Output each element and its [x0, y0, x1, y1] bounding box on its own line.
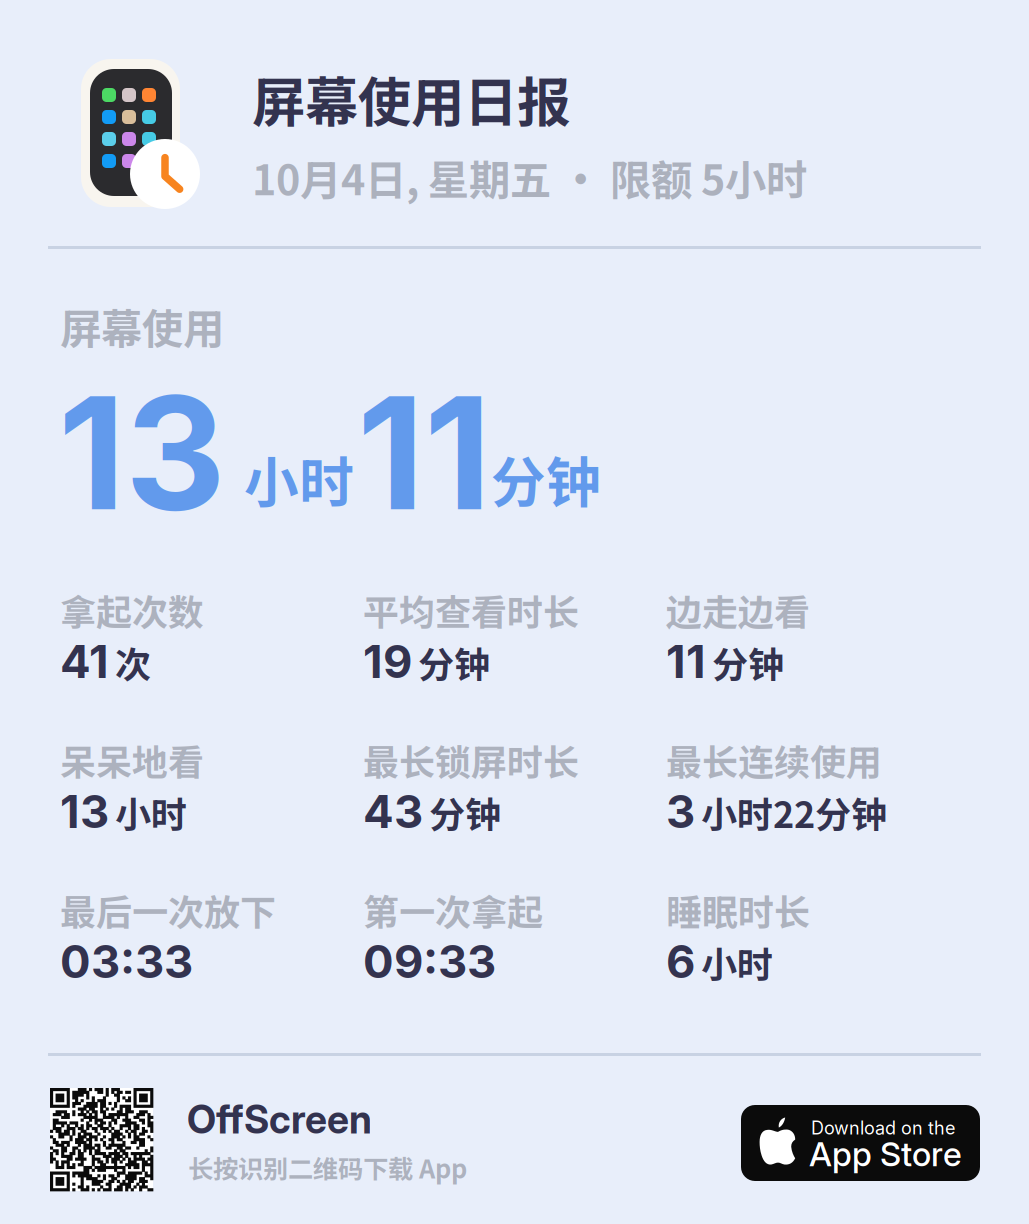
staticText: 分钟 [491, 439, 601, 518]
button[interactable]: Download on the App Store [741, 1105, 980, 1181]
staticText: 6 [666, 934, 695, 989]
staticText: 11 [357, 358, 491, 547]
staticText: 43 [363, 784, 423, 839]
staticText: 分钟 [429, 786, 501, 838]
staticText: 屏幕使用 [60, 296, 224, 356]
staticText: 第一次拿起 [363, 884, 543, 936]
staticText: 13 [58, 358, 226, 547]
staticText: 13 [60, 784, 109, 839]
staticText: 睡眠时长 [666, 884, 810, 936]
staticText: 分钟 [712, 636, 784, 688]
staticText: 最后一次放下 [60, 884, 276, 936]
staticText: 03:33 [60, 934, 193, 989]
staticText: 3 [666, 784, 695, 839]
staticText: 边走边看 [666, 584, 810, 636]
staticText: Download on the [811, 1117, 955, 1139]
staticText: 分钟 [418, 636, 490, 688]
staticText: 最长连续使用 [666, 734, 882, 786]
staticText: App Store [809, 1134, 962, 1174]
staticText: 屏幕使用日报 [252, 60, 570, 137]
staticText: 平均查看时长 [363, 584, 579, 636]
staticText: 最长锁屏时长 [363, 734, 579, 786]
staticText: 次 [115, 636, 151, 688]
staticText: 小时 [115, 786, 187, 838]
staticText: 小时22分钟 [701, 786, 887, 838]
staticText: 09:33 [363, 934, 496, 989]
staticText: 10月4日, 星期五 · 限额 5小时 [252, 147, 807, 207]
staticText: 小时 [701, 936, 773, 988]
staticText: 呆呆地看 [60, 734, 204, 786]
staticText: 11 [666, 634, 706, 689]
staticText: 小时 [244, 439, 354, 518]
staticText: 拿起次数 [60, 584, 204, 636]
staticText: 41 [60, 634, 109, 689]
staticText: OffScreen [187, 1096, 372, 1143]
staticText: 长按识别二维码下载 App [188, 1149, 467, 1186]
staticText: 19 [363, 634, 412, 689]
